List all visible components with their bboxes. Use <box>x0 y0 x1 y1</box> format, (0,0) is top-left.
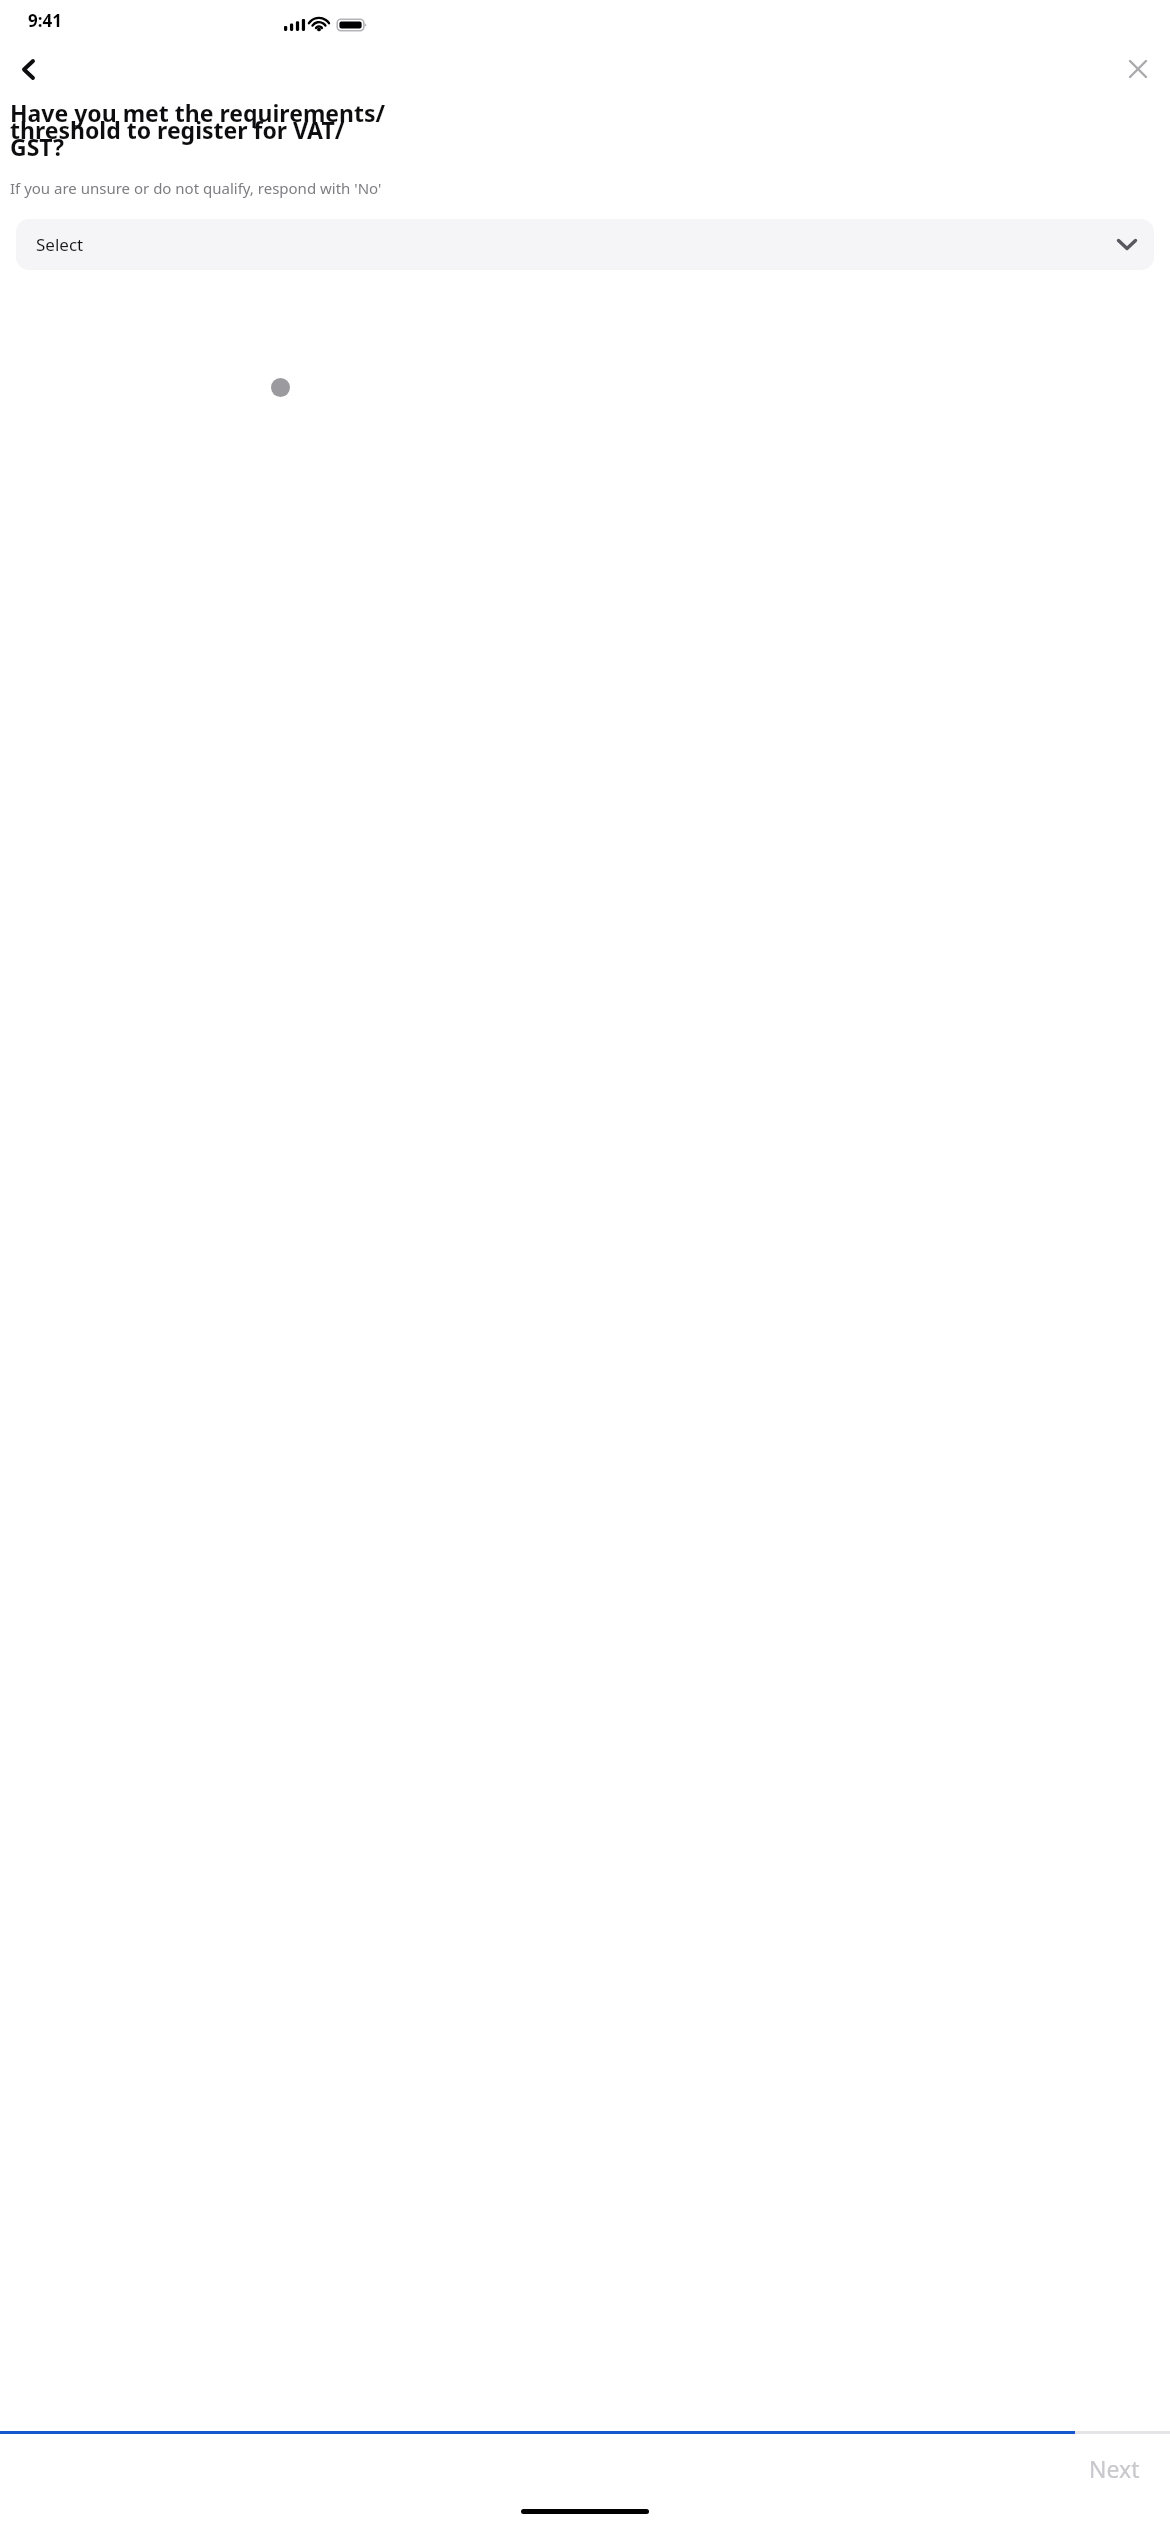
staticText: 9:41 <box>28 9 62 32</box>
button[interactable]: Back <box>1 46 55 92</box>
staticText: Select <box>36 233 84 256</box>
staticText: Next <box>1089 2453 1140 2484</box>
staticText: If you are unsure or do not qualify, res… <box>10 178 382 198</box>
staticText: Have you met the requirements/ threshold… <box>10 97 386 162</box>
button[interactable]: Next <box>0 2434 1170 2502</box>
button[interactable]: Select <box>16 219 1154 270</box>
button[interactable]: Close <box>1111 46 1165 92</box>
